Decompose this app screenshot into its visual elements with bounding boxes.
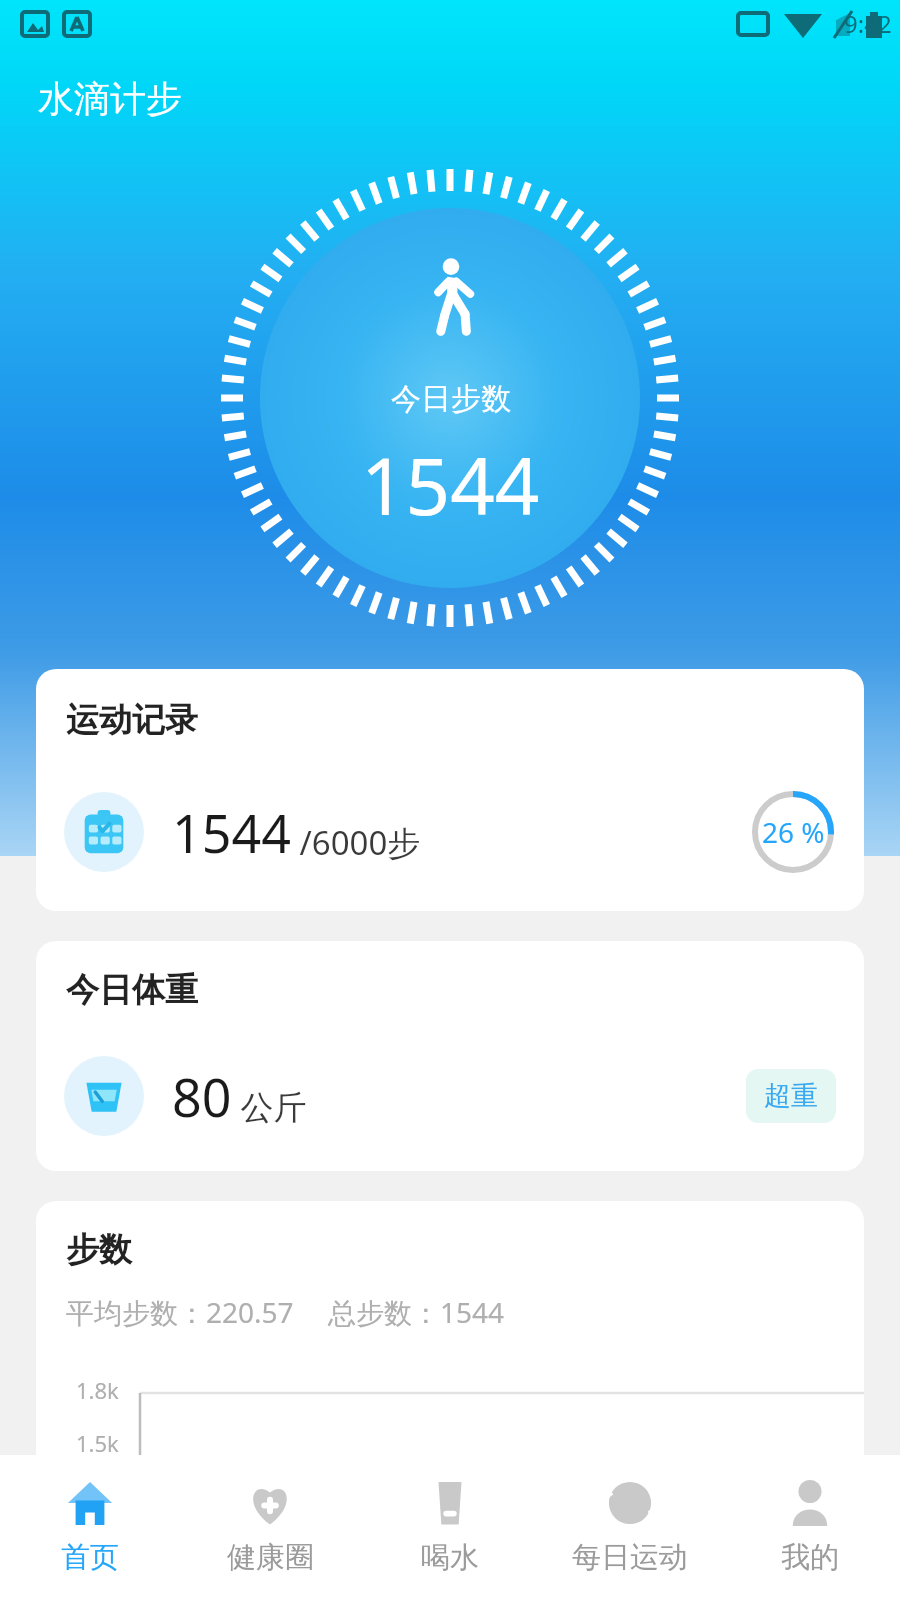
staticText: /6000步 xyxy=(291,820,421,865)
staticText: 运动记录 xyxy=(66,699,198,741)
staticText: 26 % xyxy=(762,813,825,851)
button[interactable]: 健康圈 xyxy=(180,1455,360,1600)
staticText: 今日步数 xyxy=(391,380,511,418)
staticText: 首页 xyxy=(61,1539,119,1576)
staticText: 喝水 xyxy=(421,1539,479,1576)
staticText: 1.8k xyxy=(76,1375,119,1405)
staticText: 1544 xyxy=(361,432,540,538)
button[interactable]: 运动记录 xyxy=(36,669,864,911)
button[interactable]: 喝水 xyxy=(360,1455,540,1600)
staticText: 步数 xyxy=(66,1229,132,1271)
staticText: 1.5k xyxy=(76,1428,119,1458)
staticText: 今日体重 xyxy=(66,969,198,1011)
button[interactable]: 每日运动 xyxy=(540,1455,720,1600)
staticText: 平均步数：220.57 xyxy=(66,1293,294,1331)
staticText: 公斤 xyxy=(232,1084,307,1129)
staticText: 水滴计步 xyxy=(38,76,182,121)
button[interactable]: 首页 xyxy=(0,1455,180,1600)
button[interactable]: 我的 xyxy=(720,1455,900,1600)
button[interactable]: 超重 xyxy=(764,1079,818,1113)
button[interactable]: 步数 xyxy=(36,1201,864,1531)
staticText: 80 xyxy=(172,1061,232,1132)
staticText: 1544 xyxy=(172,797,291,868)
staticText: 健康圈 xyxy=(227,1539,314,1576)
staticText: 超重 xyxy=(764,1079,818,1113)
staticText: 9:42 xyxy=(844,7,892,40)
staticText: 总步数：1544 xyxy=(328,1293,505,1331)
staticText: 每日运动 xyxy=(572,1539,688,1576)
button[interactable]: 今日体重 xyxy=(36,941,864,1171)
staticText: 我的 xyxy=(781,1539,839,1576)
